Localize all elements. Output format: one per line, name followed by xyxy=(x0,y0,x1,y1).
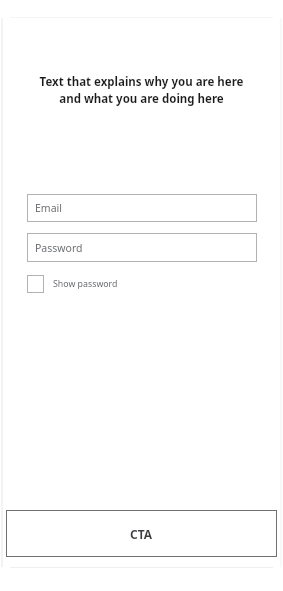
button[interactable]: Show password checkbox xyxy=(27,275,118,293)
button[interactable]: CTA xyxy=(6,510,277,557)
button[interactable]: Password xyxy=(27,233,257,262)
staticText: CTA xyxy=(130,526,153,542)
staticText: Email xyxy=(35,201,62,215)
staticText: Show password xyxy=(53,278,118,290)
staticText: Password xyxy=(35,241,83,255)
other: Show password checkbox xyxy=(27,275,44,293)
button[interactable]: Email xyxy=(27,194,257,222)
staticText: Text that explains why you are here and … xyxy=(26,74,257,106)
